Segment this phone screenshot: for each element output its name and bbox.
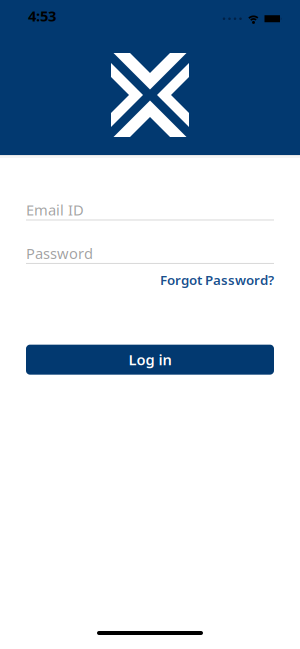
button[interactable]: Log in [26,345,274,375]
staticText: 4:53 [28,6,56,25]
button[interactable]: Email ID [26,200,274,220]
button[interactable]: Forgot Password? [160,271,274,289]
staticText: Log in [128,350,171,369]
button[interactable]: Password [26,243,274,264]
staticText: Password [26,243,93,263]
staticText: Email ID [26,200,84,219]
staticText: Forgot Password? [160,271,274,289]
